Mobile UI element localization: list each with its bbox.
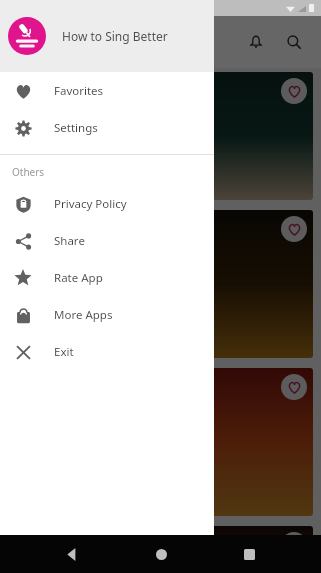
button[interactable]: Privacy Policy	[0, 185, 214, 222]
button[interactable]: Favorite	[281, 374, 307, 400]
staticText: Others	[12, 165, 45, 179]
staticText: More Apps	[54, 307, 113, 323]
button[interactable]: Favorite	[281, 216, 307, 242]
button[interactable]: How to Sing Better	[0, 0, 214, 72]
button[interactable]: Favorites	[0, 72, 214, 109]
button[interactable]: Settings	[0, 109, 214, 146]
staticText: Privacy Policy	[54, 196, 127, 212]
button[interactable]: Rate App	[0, 259, 214, 296]
button[interactable]: Back	[55, 537, 89, 571]
button[interactable]: Recents	[232, 537, 266, 571]
staticText: Share	[54, 233, 85, 249]
button[interactable]: Search	[277, 25, 311, 59]
button[interactable]: Favorite	[8, 72, 313, 200]
staticText: Settings	[54, 120, 98, 136]
button[interactable]: Favorite	[8, 210, 313, 358]
staticText: Vocal Warmups	[18, 540, 126, 559]
button[interactable]: Favorite	[281, 78, 307, 104]
button[interactable]: Exit	[0, 333, 214, 370]
staticText: Singing Lessons	[18, 275, 129, 294]
staticText: How to Sing Better	[62, 28, 168, 44]
button[interactable]: Favorite	[8, 526, 313, 573]
button[interactable]: Notifications	[239, 25, 273, 59]
button[interactable]: Favorite	[281, 532, 307, 558]
button[interactable]: Home	[144, 537, 178, 571]
staticText: How to Sing Better	[18, 127, 150, 146]
staticText: Exit	[54, 344, 74, 360]
button[interactable]: Favorite	[8, 368, 313, 516]
staticText: Rate App	[54, 270, 103, 286]
button[interactable]: More Apps	[0, 296, 214, 333]
button[interactable]: Share	[0, 222, 214, 259]
staticText: Favorites	[54, 83, 104, 99]
